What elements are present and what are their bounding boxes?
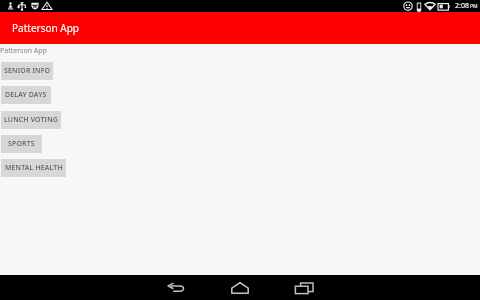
button[interactable]: Recent apps [280, 275, 328, 300]
button[interactable]: MENTAL HEALTH [1, 159, 66, 177]
button[interactable]: DELAY DAYS [1, 86, 51, 104]
staticText: Patterson App [12, 21, 79, 35]
button[interactable]: Home [216, 275, 264, 300]
button[interactable]: SPORTS [1, 135, 42, 153]
staticText: Patterson App [0, 46, 47, 56]
staticText: 2:08 [455, 1, 469, 11]
button[interactable]: SENIOR INFO [1, 62, 53, 80]
button[interactable]: Back [152, 275, 200, 300]
staticText: PM [470, 3, 478, 10]
staticText: SPORTS [8, 139, 35, 149]
staticText: LUNCH VOTING [4, 115, 59, 125]
staticText: MENTAL HEALTH [5, 163, 63, 173]
button[interactable]: LUNCH VOTING [1, 111, 61, 129]
staticText: DELAY DAYS [5, 90, 47, 100]
staticText: SENIOR INFO [4, 66, 51, 76]
